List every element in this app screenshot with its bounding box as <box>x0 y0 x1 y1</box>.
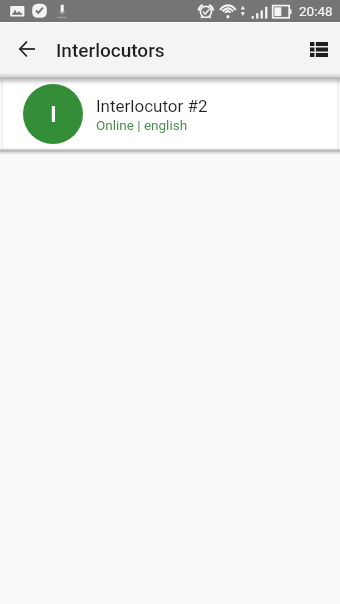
staticText: Online | english <box>96 117 188 133</box>
staticText: 20:48 <box>299 3 333 19</box>
button[interactable]: Interlocutor #2 <box>3 79 337 149</box>
staticText: Interlocutors <box>56 39 165 61</box>
staticText: Interlocutor #2 <box>96 96 208 116</box>
button[interactable]: Back <box>0 22 54 76</box>
button[interactable]: Switch view <box>292 25 340 73</box>
